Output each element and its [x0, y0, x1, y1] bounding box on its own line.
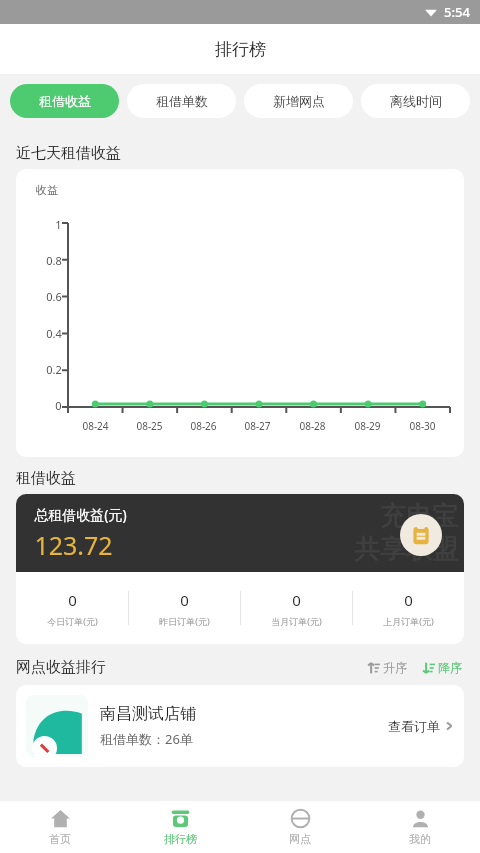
staticText: 08-27: [244, 419, 271, 433]
staticText: 降序: [438, 660, 462, 675]
button[interactable]: 网点: [240, 801, 360, 853]
staticText: 08-24: [82, 419, 109, 433]
staticText: 升序: [383, 660, 407, 675]
button[interactable]: 排行榜: [120, 801, 240, 853]
button[interactable]: 租借收益: [10, 84, 119, 118]
button[interactable]: 新增网点: [244, 84, 353, 118]
staticText: 0: [180, 590, 189, 610]
staticText: 新增网点: [273, 93, 325, 109]
staticText: 近七天租借收益: [16, 144, 121, 163]
staticText: 租借单数：26单: [100, 730, 193, 748]
staticText: 收益: [36, 183, 58, 197]
staticText: 查看订单: [388, 718, 440, 734]
staticText: 南昌测试店铺: [100, 704, 196, 724]
button[interactable]: 租借单数: [127, 84, 236, 118]
staticText: 0.4: [46, 326, 62, 341]
staticText: 网点: [289, 832, 311, 846]
button[interactable]: 升序: [366, 658, 409, 677]
staticText: 离线时间: [390, 93, 442, 109]
staticText: 0: [68, 590, 77, 610]
button[interactable]: 0: [353, 590, 464, 627]
button[interactable]: 南昌测试店铺: [16, 685, 464, 767]
staticText: 总租借收益(元): [34, 505, 127, 524]
staticText: 0.6: [46, 289, 62, 304]
staticText: 首页: [49, 832, 71, 846]
staticText: 0: [292, 590, 301, 610]
staticText: 租借收益: [16, 469, 76, 488]
button[interactable]: 0: [16, 590, 128, 627]
staticText: 网点收益排行: [16, 658, 106, 677]
button[interactable]: 0: [129, 590, 240, 627]
button[interactable]: 0: [241, 590, 352, 627]
staticText: 5:54: [444, 3, 470, 21]
staticText: 租借收益: [39, 93, 91, 109]
staticText: 排行榜: [215, 39, 266, 60]
staticText: 上月订单(元): [383, 615, 434, 627]
button[interactable]: 首页: [0, 801, 120, 853]
staticText: 08-29: [354, 419, 381, 433]
staticText: 0.2: [46, 362, 62, 377]
staticText: 08-30: [409, 419, 436, 433]
button[interactable]: 我的: [360, 801, 480, 853]
staticText: 当月订单(元): [271, 615, 322, 627]
button[interactable]: 订单记录: [400, 514, 442, 556]
staticText: 共享联盟: [354, 533, 458, 566]
staticText: 今日订单(元): [47, 615, 98, 627]
staticText: 08-26: [190, 419, 217, 433]
staticText: 租借单数: [156, 93, 208, 109]
staticText: 排行榜: [164, 832, 197, 846]
staticText: 充电宝: [380, 500, 458, 533]
button[interactable]: 离线时间: [361, 84, 470, 118]
staticText: 08-28: [299, 419, 326, 433]
staticText: 我的: [409, 832, 431, 846]
staticText: 0: [55, 398, 62, 413]
staticText: 昨日订单(元): [159, 615, 210, 627]
staticText: 123.72: [34, 528, 113, 562]
staticText: 0.8: [46, 253, 62, 268]
staticText: 0: [404, 590, 413, 610]
staticText: 1: [55, 217, 62, 232]
button[interactable]: 降序: [421, 658, 464, 677]
staticText: 08-25: [136, 419, 163, 433]
